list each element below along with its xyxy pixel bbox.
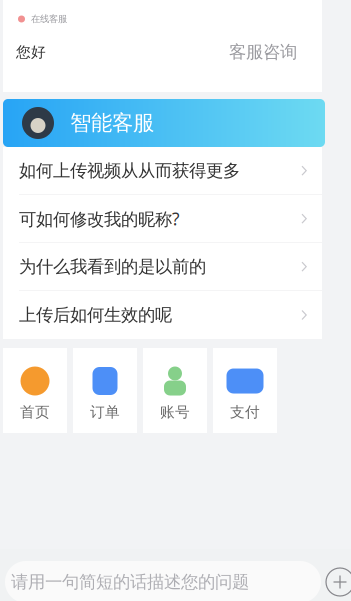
staticText: 支付 [230, 403, 260, 421]
button[interactable]: 请用一句简短的话描述您的问题 [5, 561, 321, 601]
staticText: 可如何修改我的昵称? [19, 207, 180, 230]
button[interactable]: 支付 [213, 348, 277, 433]
staticText: 智能客服 [70, 110, 154, 136]
staticText: 首页 [20, 403, 50, 421]
staticText: 客服咨询 [229, 41, 297, 63]
staticText: 为什么我看到的是以前的 [19, 256, 206, 277]
staticText: 如何上传视频从从而获得更多 [19, 160, 240, 181]
staticText: 您好 [16, 43, 46, 61]
button[interactable]: 账号 [143, 348, 207, 433]
staticText: 在线客服 [31, 13, 67, 25]
staticText: 请用一句简短的话描述您的问题 [11, 571, 249, 593]
button[interactable]: 上传后如何生效的呢 [3, 291, 322, 339]
staticText: 账号 [160, 403, 190, 421]
button[interactable]: 如何上传视频从从而获得更多 [3, 147, 322, 195]
button[interactable]: More options [323, 565, 351, 599]
button[interactable]: 首页 [3, 348, 67, 433]
staticText: 订单 [90, 403, 120, 421]
button[interactable]: 智能客服 [0, 99, 351, 147]
button[interactable]: 可如何修改我的昵称? [3, 195, 322, 243]
button[interactable]: 订单 [73, 348, 137, 433]
staticText: 上传后如何生效的呢 [19, 304, 172, 326]
button[interactable]: 为什么我看到的是以前的 [3, 243, 322, 291]
